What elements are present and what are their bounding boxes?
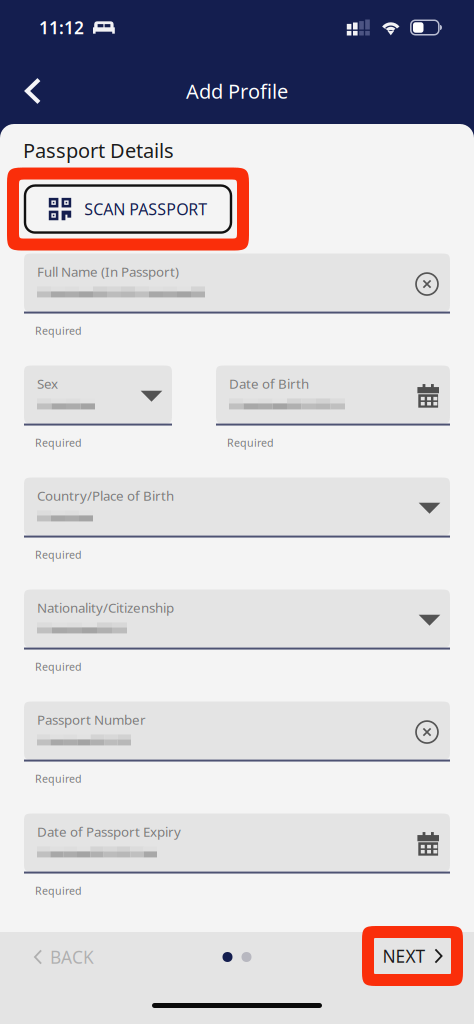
staticText: Sex [37, 375, 58, 392]
staticText: Required [227, 436, 274, 450]
staticText: Required [35, 436, 82, 450]
staticText: Required [35, 660, 82, 674]
staticText: Nationality/Citizenship [37, 599, 174, 616]
button[interactable]: BACK [0, 935, 118, 979]
staticText: Required [35, 884, 82, 898]
staticText: Passport Number [37, 711, 146, 728]
staticText: Add Profile [186, 78, 288, 104]
staticText: Country/Place of Birth [37, 487, 174, 504]
staticText: BACK [50, 945, 94, 968]
staticText: Date of Passport Expiry [37, 823, 181, 840]
button[interactable]: Back [11, 69, 55, 113]
staticText: SCAN PASSPORT [84, 198, 207, 220]
staticText: Required [35, 548, 82, 562]
staticText: Date of Birth [229, 375, 309, 392]
staticText: 11:12 [39, 16, 84, 39]
staticText: Passport Details [23, 137, 174, 164]
staticText: Full Name (In Passport) [37, 263, 179, 280]
staticText: NEXT [382, 944, 425, 967]
button[interactable]: NEXT [362, 926, 463, 986]
staticText: Required [35, 324, 82, 338]
staticText: Required [35, 772, 82, 786]
button[interactable]: SCAN PASSPORT [0, 168, 249, 251]
